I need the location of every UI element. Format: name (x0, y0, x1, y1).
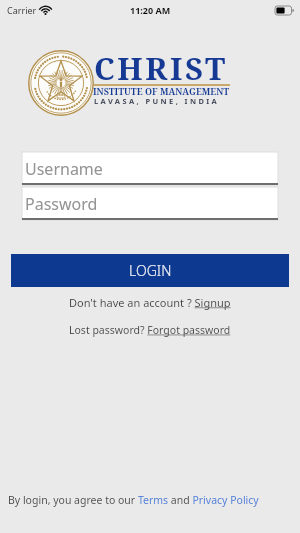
button[interactable]: Don't have an account ? Signup (69, 295, 231, 310)
staticText: 11:20 AM (130, 4, 171, 16)
button[interactable]: By login, you agree to our Terms and Pri… (8, 493, 259, 507)
staticText: INSTITUTE OF MANAGEMENT (93, 85, 230, 97)
staticText: LAVASA, PUNE, INDIA (94, 96, 220, 106)
button[interactable]: Password (22, 187, 278, 220)
staticText: CHRIST (94, 47, 228, 89)
button[interactable]: Username (22, 152, 278, 185)
button[interactable]: LOGIN (11, 254, 289, 287)
staticText: Username (25, 158, 103, 180)
staticText: Don't have an account ? Signup (69, 295, 231, 310)
staticText: Lost password? Forgot password (69, 323, 231, 337)
staticText: LOGIN (129, 261, 172, 280)
staticText: Password (25, 193, 98, 215)
staticText: Carrier (7, 4, 37, 16)
button[interactable]: Lost password? Forgot password (69, 323, 231, 337)
